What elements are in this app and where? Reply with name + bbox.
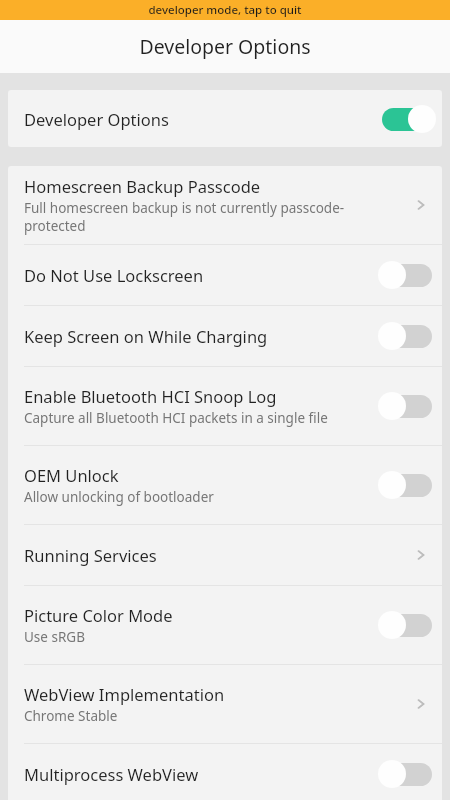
staticText: Running Services <box>24 544 157 566</box>
staticText: Do Not Use Lockscreen <box>24 264 204 286</box>
other: Open <box>406 540 436 570</box>
staticText: Picture Color Mode <box>24 604 173 626</box>
staticText: OEM Unlock <box>24 464 119 486</box>
staticText: Enable Bluetooth HCI Snoop Log <box>24 385 277 407</box>
staticText: Full homescreen backup is not currently … <box>24 199 345 235</box>
button[interactable]: Toggle off <box>378 389 436 423</box>
button[interactable]: Enable Bluetooth HCI Snoop Log <box>8 367 442 445</box>
button[interactable]: Keep Screen on While Charging <box>8 306 442 366</box>
button[interactable]: Picture Color Mode <box>8 586 442 664</box>
button[interactable]: Toggle off <box>378 258 436 292</box>
button[interactable]: Homescreen Backup Passcode <box>8 166 442 244</box>
staticText: Developer Options <box>139 33 311 60</box>
other: Open <box>406 689 436 719</box>
staticText: Chrome Stable <box>24 707 118 725</box>
button[interactable]: OEM Unlock <box>8 446 442 524</box>
button[interactable]: Toggle off <box>378 319 436 353</box>
staticText: Multiprocess WebView <box>24 763 199 785</box>
staticText: Capture all Bluetooth HCI packets in a s… <box>24 409 328 427</box>
button[interactable]: Toggle on <box>378 102 436 136</box>
button[interactable]: Do Not Use Lockscreen <box>8 245 442 305</box>
staticText: Developer Options <box>24 108 169 130</box>
button[interactable]: Developer Options <box>8 90 442 147</box>
staticText: Homescreen Backup Passcode <box>24 175 261 197</box>
button[interactable]: WebView Implementation <box>8 665 442 743</box>
button[interactable]: Toggle off <box>378 608 436 642</box>
button[interactable]: Running Services <box>8 525 442 585</box>
button[interactable]: Toggle off <box>378 468 436 502</box>
staticText: developer mode, tap to quit <box>148 2 302 18</box>
staticText: Keep Screen on While Charging <box>24 325 268 347</box>
other: Open <box>406 190 436 220</box>
button[interactable]: Multiprocess WebView <box>8 744 442 800</box>
staticText: Allow unlocking of bootloader <box>24 488 214 506</box>
button[interactable]: developer mode, tap to quit <box>0 0 450 20</box>
staticText: WebView Implementation <box>24 683 225 705</box>
button[interactable]: Toggle off <box>378 757 436 791</box>
staticText: Use sRGB <box>24 628 85 646</box>
